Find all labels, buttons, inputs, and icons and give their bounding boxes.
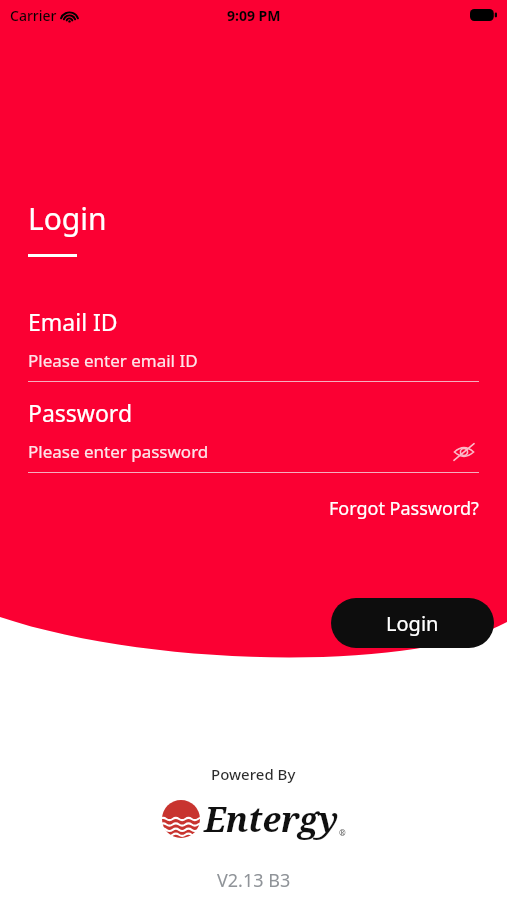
button[interactable]: Please enter email ID xyxy=(28,349,479,372)
staticText: Email ID xyxy=(28,306,118,337)
staticText: Please enter password xyxy=(28,440,209,463)
staticText: Please enter email ID xyxy=(28,349,198,372)
button[interactable]: Show password xyxy=(449,441,479,463)
staticText: Entergy xyxy=(204,796,339,842)
staticText: 9:09 PM xyxy=(227,6,281,25)
staticText: Login xyxy=(386,610,439,637)
staticText: ® xyxy=(339,827,346,838)
button[interactable]: Login xyxy=(331,598,494,648)
staticText: Carrier xyxy=(10,6,57,25)
staticText: V2.13 B3 xyxy=(217,868,291,893)
staticText: Forgot Password? xyxy=(329,496,479,521)
staticText: Password xyxy=(28,397,133,428)
staticText: Powered By xyxy=(211,764,296,784)
button[interactable]: Forgot Password? xyxy=(329,492,479,525)
staticText: Login xyxy=(28,198,107,239)
button[interactable]: Please enter password xyxy=(28,440,479,463)
